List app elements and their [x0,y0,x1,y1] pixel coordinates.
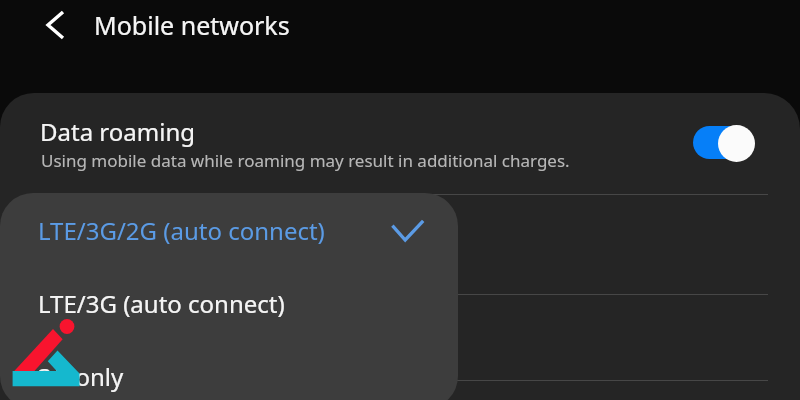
button[interactable] [0,240,458,313]
button[interactable] [0,313,458,386]
button[interactable] [0,295,800,380]
staticText: Mobile networks [94,8,290,42]
staticText: 3G only [38,360,124,393]
staticText: Using mobile data while roaming may resu… [41,149,570,172]
staticText: Data roaming [40,115,195,148]
button[interactable] [0,93,800,194]
button[interactable]: Back [30,0,80,50]
button[interactable] [0,193,458,240]
staticText: LTE/3G/2G (auto connect) [38,214,325,247]
button[interactable] [0,195,800,294]
button[interactable]: Data roaming switch [689,121,759,165]
staticText: LTE/3G (auto connect) [38,287,285,320]
